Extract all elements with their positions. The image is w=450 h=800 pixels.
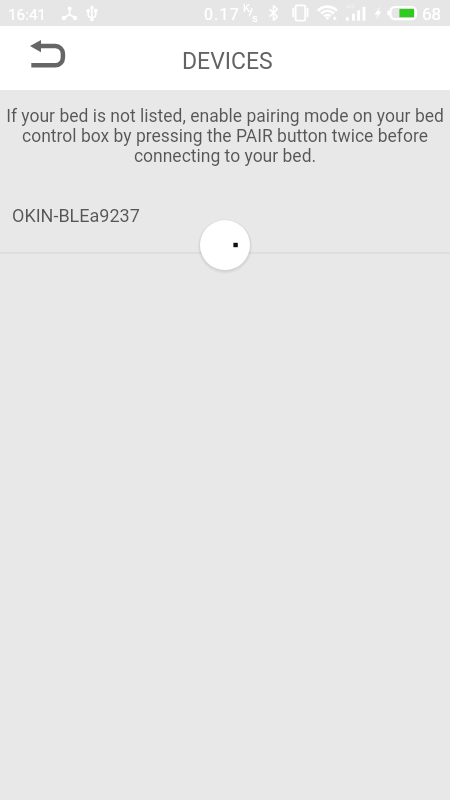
staticText: 68 xyxy=(422,4,442,24)
staticText: 0.17 xyxy=(204,5,240,24)
staticText: 16:41 xyxy=(8,6,47,24)
staticText: OKIN-BLEa9237 xyxy=(12,205,140,226)
button[interactable]: OKIN-BLEa9237 xyxy=(0,192,450,238)
staticText: K xyxy=(243,2,250,15)
staticText: DEVICES xyxy=(182,48,273,75)
staticText: If your bed is not listed, enable pairin… xyxy=(3,106,447,166)
button[interactable]: Back xyxy=(8,30,64,86)
staticText: s xyxy=(252,12,258,25)
